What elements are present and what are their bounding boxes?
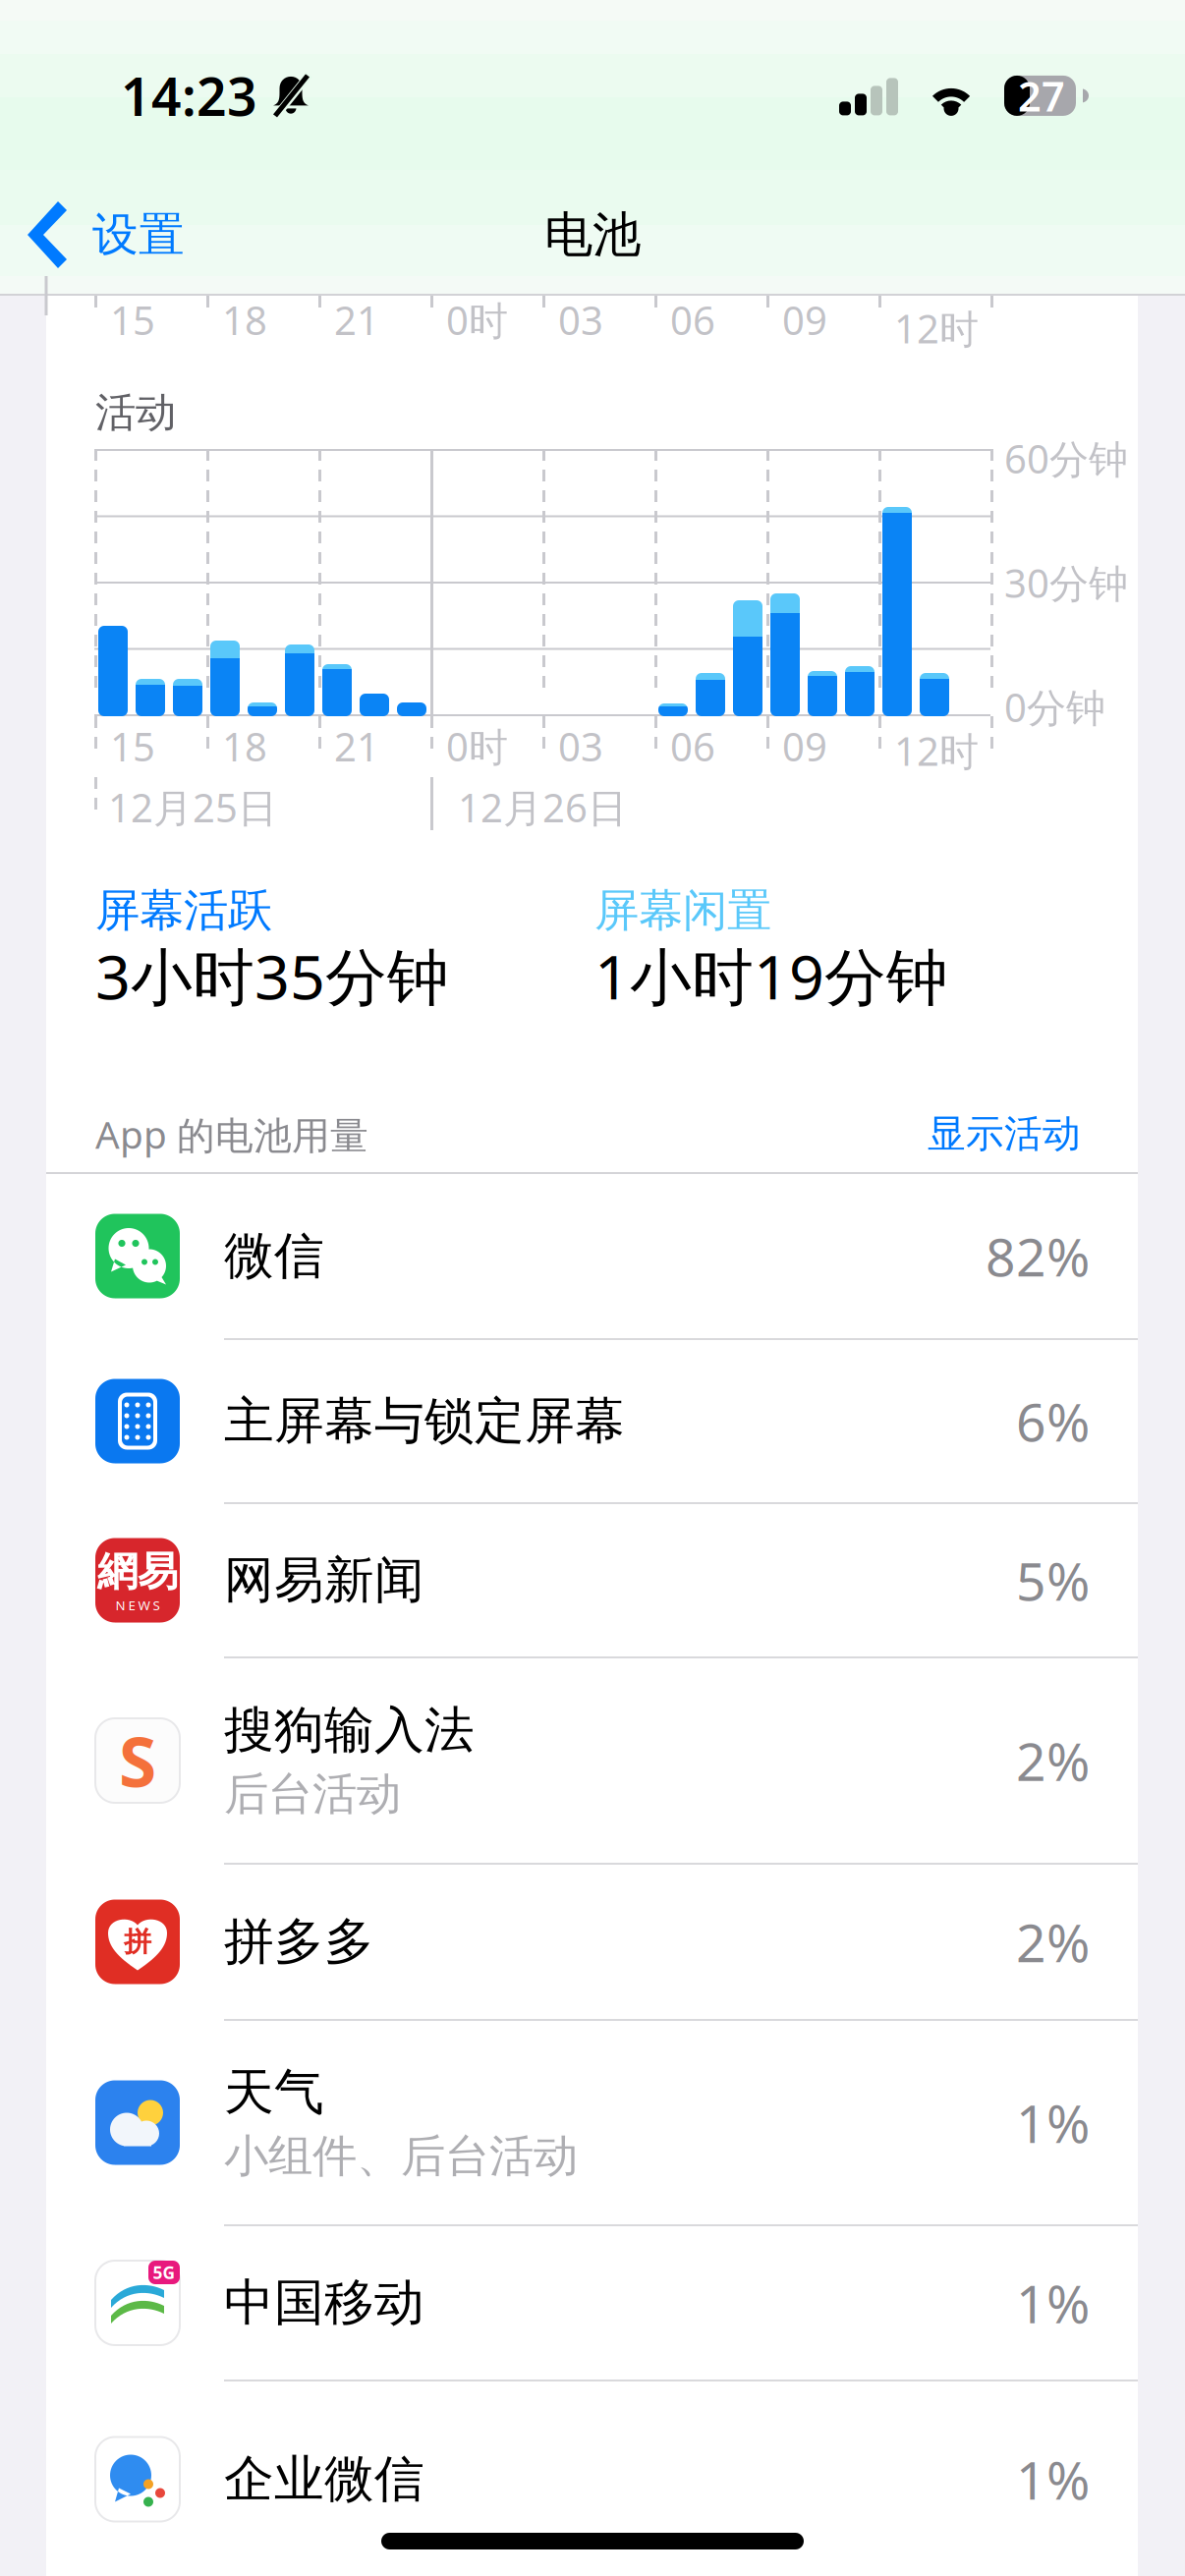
staticText: 0分钟 bbox=[1004, 681, 1105, 733]
button[interactable]: 天气 bbox=[46, 2021, 1138, 2224]
staticText: 14:23 bbox=[121, 61, 257, 130]
staticText: 屏幕闲置 bbox=[594, 883, 771, 938]
staticText: 1小时19分钟 bbox=[594, 935, 948, 1016]
staticText: 12时 bbox=[894, 302, 979, 354]
button[interactable]: 5G bbox=[46, 2226, 1138, 2380]
staticText: 小组件、后台活动 bbox=[224, 2129, 578, 2184]
staticText: 微信 bbox=[224, 1226, 324, 1287]
button[interactable]: 主屏幕与锁定屏幕 bbox=[46, 1340, 1138, 1502]
staticText: 1% bbox=[1016, 2268, 1090, 2338]
staticText: 03 bbox=[558, 294, 603, 346]
staticText: 天气 bbox=[224, 2062, 324, 2123]
staticText: 15 bbox=[110, 294, 155, 346]
button[interactable]: 網易 bbox=[46, 1504, 1138, 1656]
staticText: N E W S bbox=[115, 1596, 160, 1614]
staticText: 网易新闻 bbox=[224, 1550, 424, 1611]
staticText: 12月26日 bbox=[458, 781, 627, 833]
staticText: S bbox=[119, 1715, 156, 1806]
button[interactable]: S bbox=[46, 1658, 1138, 1863]
staticText: 06 bbox=[670, 294, 715, 346]
staticText: 18 bbox=[222, 294, 267, 346]
staticText: 电池 bbox=[544, 205, 641, 265]
staticText: 1% bbox=[1016, 2088, 1090, 2157]
staticText: 中国移动 bbox=[224, 2272, 424, 2333]
staticText: 27 bbox=[1018, 69, 1065, 123]
button[interactable]: 拼 bbox=[46, 1865, 1138, 2019]
staticText: 0时 bbox=[446, 294, 508, 346]
staticText: 拼 bbox=[124, 1925, 151, 1959]
staticText: 21 bbox=[334, 720, 379, 772]
staticText: 屏幕活跃 bbox=[95, 883, 272, 938]
button[interactable]: 微信 bbox=[46, 1174, 1138, 1338]
staticText: 活动 bbox=[95, 388, 176, 438]
staticText: 显示活动 bbox=[928, 1111, 1081, 1157]
staticText: 30分钟 bbox=[1004, 556, 1128, 609]
staticText: 后台活动 bbox=[224, 1767, 401, 1821]
staticText: 拼多多 bbox=[224, 1911, 374, 1972]
staticText: 5% bbox=[1016, 1546, 1090, 1615]
staticText: 5G bbox=[153, 2261, 175, 2284]
staticText: 0时 bbox=[446, 720, 508, 772]
button[interactable]: 显示活动 bbox=[928, 1111, 1081, 1157]
staticText: 09 bbox=[782, 294, 827, 346]
staticText: 3小时35分钟 bbox=[95, 935, 449, 1016]
button[interactable]: 设置 bbox=[0, 168, 210, 302]
staticText: 21 bbox=[334, 294, 379, 346]
staticText: 12月25日 bbox=[108, 781, 277, 833]
staticText: App 的电池用量 bbox=[95, 1109, 368, 1159]
staticText: 1% bbox=[1016, 2444, 1090, 2514]
staticText: 主屏幕与锁定屏幕 bbox=[224, 1391, 625, 1452]
staticText: 18 bbox=[222, 720, 267, 772]
staticText: 设置 bbox=[92, 207, 185, 263]
staticText: 06 bbox=[670, 720, 715, 772]
staticText: 82% bbox=[986, 1221, 1090, 1291]
button[interactable]: 企业微信 bbox=[46, 2381, 1138, 2576]
staticText: 60分钟 bbox=[1004, 432, 1128, 484]
staticText: 6% bbox=[1016, 1386, 1090, 1456]
staticText: 12时 bbox=[894, 724, 979, 777]
staticText: 搜狗输入法 bbox=[224, 1700, 475, 1761]
staticText: 2% bbox=[1016, 1907, 1090, 1977]
staticText: 2% bbox=[1016, 1726, 1090, 1795]
staticText: 網易 bbox=[97, 1547, 178, 1597]
staticText: 03 bbox=[558, 720, 603, 772]
staticText: 15 bbox=[110, 720, 155, 772]
staticText: 09 bbox=[782, 720, 827, 772]
staticText: 企业微信 bbox=[224, 2449, 424, 2510]
